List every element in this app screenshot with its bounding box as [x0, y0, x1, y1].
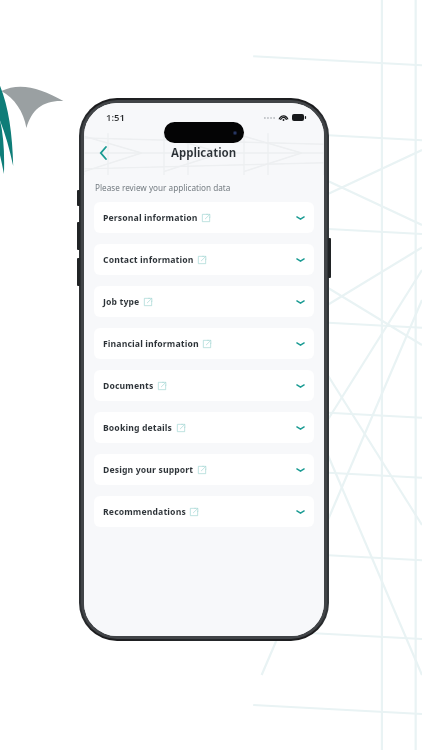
staticText: Personal information [103, 212, 198, 224]
button[interactable]: Personal information [94, 202, 314, 233]
staticText: Recommendations [103, 506, 186, 518]
staticText: Design your support [103, 464, 194, 476]
staticText: Booking details [103, 422, 173, 434]
staticText: 1:51 [106, 111, 125, 124]
button[interactable]: Contact information [94, 244, 314, 275]
staticText: Documents [103, 380, 154, 392]
button[interactable]: Financial information [94, 328, 314, 359]
button[interactable]: Booking details [94, 412, 314, 443]
staticText: Application [171, 145, 237, 161]
staticText: Please review your application data [95, 182, 231, 193]
button[interactable]: Back [92, 142, 114, 164]
staticText: Job type [103, 296, 140, 308]
staticText: Contact information [103, 254, 194, 266]
staticText: Financial information [103, 338, 199, 350]
button[interactable]: Recommendations [94, 496, 314, 527]
button[interactable]: Documents [94, 370, 314, 401]
button[interactable]: Design your support [94, 454, 314, 485]
button[interactable]: Job type [94, 286, 314, 317]
